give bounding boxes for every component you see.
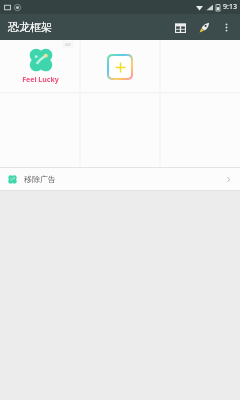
button[interactable]: 移除广告 — [0, 168, 240, 190]
staticText: Feel Lucky — [22, 75, 59, 85]
button[interactable]: Boost — [194, 17, 214, 37]
button[interactable]: Add — [80, 40, 160, 93]
button[interactable]: Calendar — [170, 17, 190, 37]
staticText: 移除广告 — [24, 174, 56, 184]
staticText: 9:13 — [223, 2, 237, 12]
button[interactable]: More options — [216, 17, 236, 37]
button[interactable]: Feel Lucky — [0, 40, 80, 93]
staticText: AD — [65, 42, 71, 47]
staticText: 恐龙框架 — [8, 20, 52, 34]
